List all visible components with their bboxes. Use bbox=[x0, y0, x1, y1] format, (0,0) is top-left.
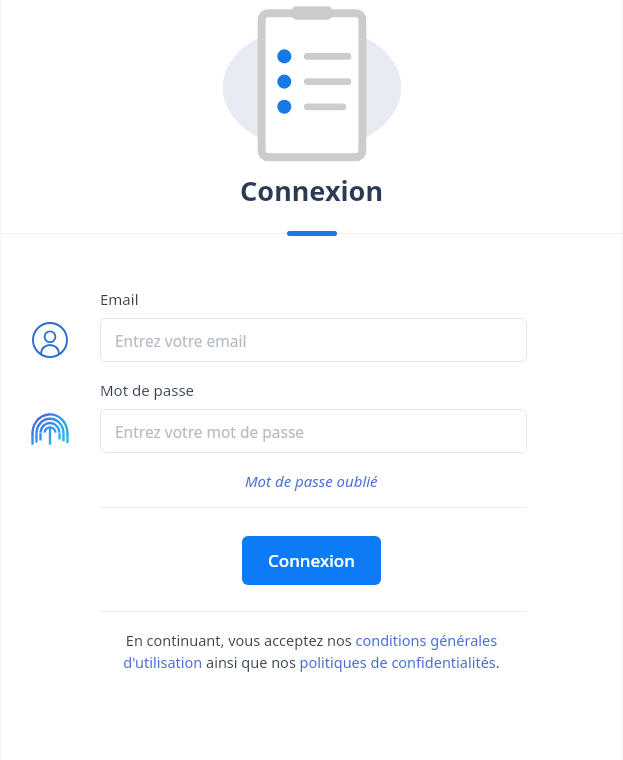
staticText: Entrez votre email bbox=[115, 330, 247, 351]
staticText: Entrez votre mot de passe bbox=[115, 421, 305, 442]
other: Compte utilisateur bbox=[32, 322, 68, 358]
button[interactable] bbox=[287, 231, 337, 236]
staticText: Mot de passe oublié bbox=[245, 471, 378, 491]
button[interactable]: Entrez votre email bbox=[100, 318, 527, 362]
staticText: Mot de passe bbox=[100, 380, 195, 400]
button[interactable]: Entrez votre mot de passe bbox=[100, 409, 527, 453]
staticText: Connexion bbox=[268, 549, 355, 572]
staticText: Email bbox=[100, 289, 139, 309]
staticText: Connexion bbox=[240, 172, 383, 209]
button[interactable]: Mot de passe oublié bbox=[239, 469, 384, 493]
button[interactable]: En continuant, vous acceptez nos conditi… bbox=[100, 630, 523, 672]
button[interactable]: Connexion bbox=[242, 536, 381, 585]
other: Empreinte digitale bbox=[31, 412, 69, 450]
